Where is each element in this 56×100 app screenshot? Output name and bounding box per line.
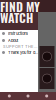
staticText: SUPPORT THE DEVELOPER [3,44,37,49]
button[interactable]: Radar [19,92,37,100]
button[interactable]: Home [0,92,19,100]
staticText: About [8,38,18,43]
button[interactable]: About [0,37,38,44]
staticText: FIND MY [0,0,40,15]
button[interactable]: Settings [37,92,56,100]
staticText: Thank you for donating [8,50,38,55]
button[interactable]: Instructions [0,30,38,37]
staticText: Instructions [8,31,28,36]
button[interactable]: Thank you for donating [0,49,38,56]
staticText: WATCH [0,9,33,26]
